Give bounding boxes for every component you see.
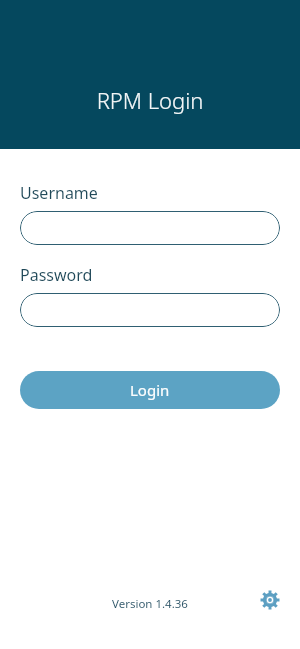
staticText: RPM Login — [0, 85, 300, 115]
staticText: Password — [20, 264, 93, 286]
staticText: Login — [130, 380, 170, 400]
button[interactable]: Settings — [257, 587, 283, 613]
button[interactable] — [20, 211, 280, 245]
button[interactable] — [20, 293, 280, 327]
button[interactable]: Login — [20, 371, 280, 409]
staticText: Version 1.4.36 — [112, 596, 188, 612]
staticText: Username — [20, 182, 98, 204]
